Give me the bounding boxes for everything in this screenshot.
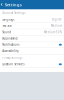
button[interactable]: Back [0, 0, 4, 9]
staticText: Settings [5, 2, 22, 7]
staticText: Appearance [2, 37, 18, 40]
staticText: Sound [2, 30, 11, 34]
staticText: Privacy Settings [2, 56, 22, 59]
button[interactable]: Location Services [0, 61, 64, 68]
staticText: Medium 50% [44, 30, 62, 34]
staticText: Medium [51, 24, 62, 27]
button[interactable]: Notifications [0, 42, 64, 48]
staticText: Text Size [2, 24, 12, 27]
button[interactable]: Accessibility [0, 48, 64, 54]
staticText: Language [2, 18, 15, 21]
staticText: Location Services [2, 62, 24, 66]
staticText: Notifications [2, 43, 19, 46]
staticText: Accessibility [2, 49, 18, 53]
button[interactable]: Language [0, 16, 64, 23]
staticText: General Settings [2, 11, 25, 15]
button[interactable]: Sound [0, 29, 64, 35]
staticText: English [52, 18, 62, 21]
button[interactable]: Appearance [0, 35, 64, 42]
button[interactable]: Text Size [0, 23, 64, 29]
